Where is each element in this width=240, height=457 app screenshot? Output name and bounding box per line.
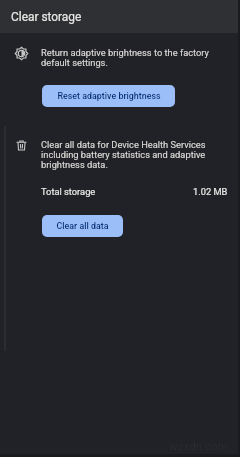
staticText: Clear storage [11,10,82,24]
staticText: Total storage [41,186,96,197]
staticText: 1.02 MB [193,186,228,197]
staticText: Reset adaptive brightness [57,91,161,101]
staticText: Clear all data [56,221,109,231]
other: Delete [15,139,28,152]
button[interactable]: Clear all data [42,215,123,237]
other: Brightness [15,47,28,60]
staticText: Clear all data for Device Health Service… [41,139,213,171]
button[interactable]: Reset adaptive brightness [42,85,175,107]
staticText: Return adaptive brightness to the factor… [41,47,213,69]
